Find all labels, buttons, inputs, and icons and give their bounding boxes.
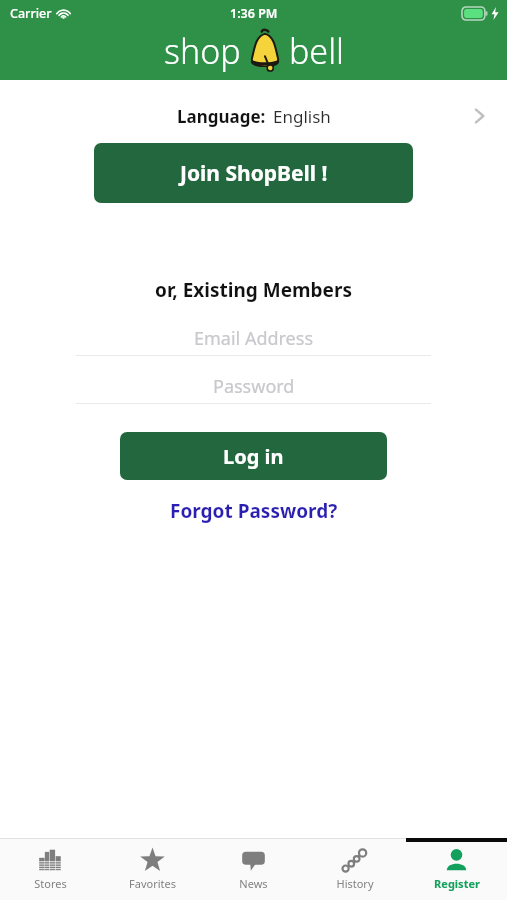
button[interactable]: Language: — [0, 98, 507, 134]
staticText: Language: — [177, 105, 266, 128]
button[interactable]: History — [304, 838, 405, 900]
staticText: Log in — [223, 443, 284, 470]
staticText: bell — [289, 28, 344, 74]
button[interactable]: Favorites — [102, 838, 203, 900]
staticText: shop — [164, 28, 241, 74]
other: History — [341, 847, 368, 874]
other: Register — [443, 847, 470, 874]
button[interactable]: Email Address — [76, 321, 431, 355]
staticText: News — [239, 876, 268, 891]
staticText: Favorites — [129, 876, 176, 891]
staticText: Join ShopBell ! — [180, 159, 328, 188]
button[interactable]: Stores — [0, 838, 101, 900]
staticText: History — [336, 876, 374, 891]
staticText: Password — [213, 374, 295, 399]
staticText: English — [273, 105, 331, 128]
staticText: Email Address — [194, 326, 314, 351]
button[interactable]: Password — [76, 369, 431, 403]
staticText: Carrier — [10, 5, 52, 22]
other: Favorites — [139, 847, 166, 874]
staticText: Stores — [34, 876, 67, 891]
staticText: Forgot Password? — [170, 498, 338, 524]
other: News — [240, 847, 267, 874]
staticText: Register — [434, 876, 480, 891]
button[interactable]: Forgot Password? — [164, 492, 344, 530]
staticText: 1:36 PM — [230, 5, 278, 22]
button[interactable]: Log in — [120, 432, 387, 480]
other: Stores — [37, 847, 64, 874]
button[interactable]: Register — [406, 838, 507, 900]
button[interactable]: Join ShopBell ! — [94, 143, 413, 203]
staticText: or, Existing Members — [155, 277, 352, 303]
button[interactable]: News — [203, 838, 304, 900]
